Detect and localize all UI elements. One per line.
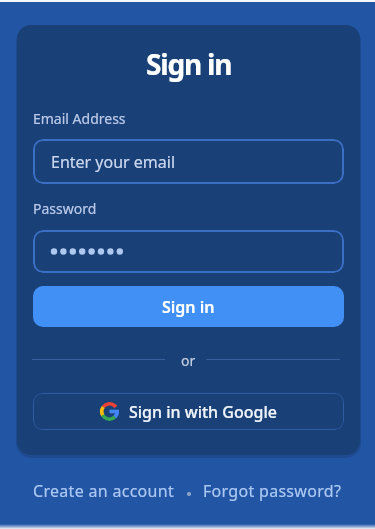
staticText: Sign in: [162, 296, 215, 318]
button[interactable]: Forgot password?: [203, 480, 342, 502]
button[interactable]: Enter your email: [33, 139, 344, 184]
button[interactable]: Create an account: [33, 480, 175, 502]
staticText: or: [181, 351, 196, 370]
button[interactable]: [33, 230, 344, 273]
staticText: Create an account: [33, 480, 175, 502]
button[interactable]: Sign in: [33, 286, 344, 327]
staticText: Sign in with Google: [129, 401, 277, 423]
staticText: Email Address: [33, 109, 126, 128]
staticText: Password: [33, 199, 97, 218]
staticText: Forgot password?: [203, 480, 342, 502]
button[interactable]: Sign in with Google: [33, 393, 344, 430]
staticText: Sign in: [146, 45, 232, 83]
staticText: Enter your email: [51, 151, 176, 173]
